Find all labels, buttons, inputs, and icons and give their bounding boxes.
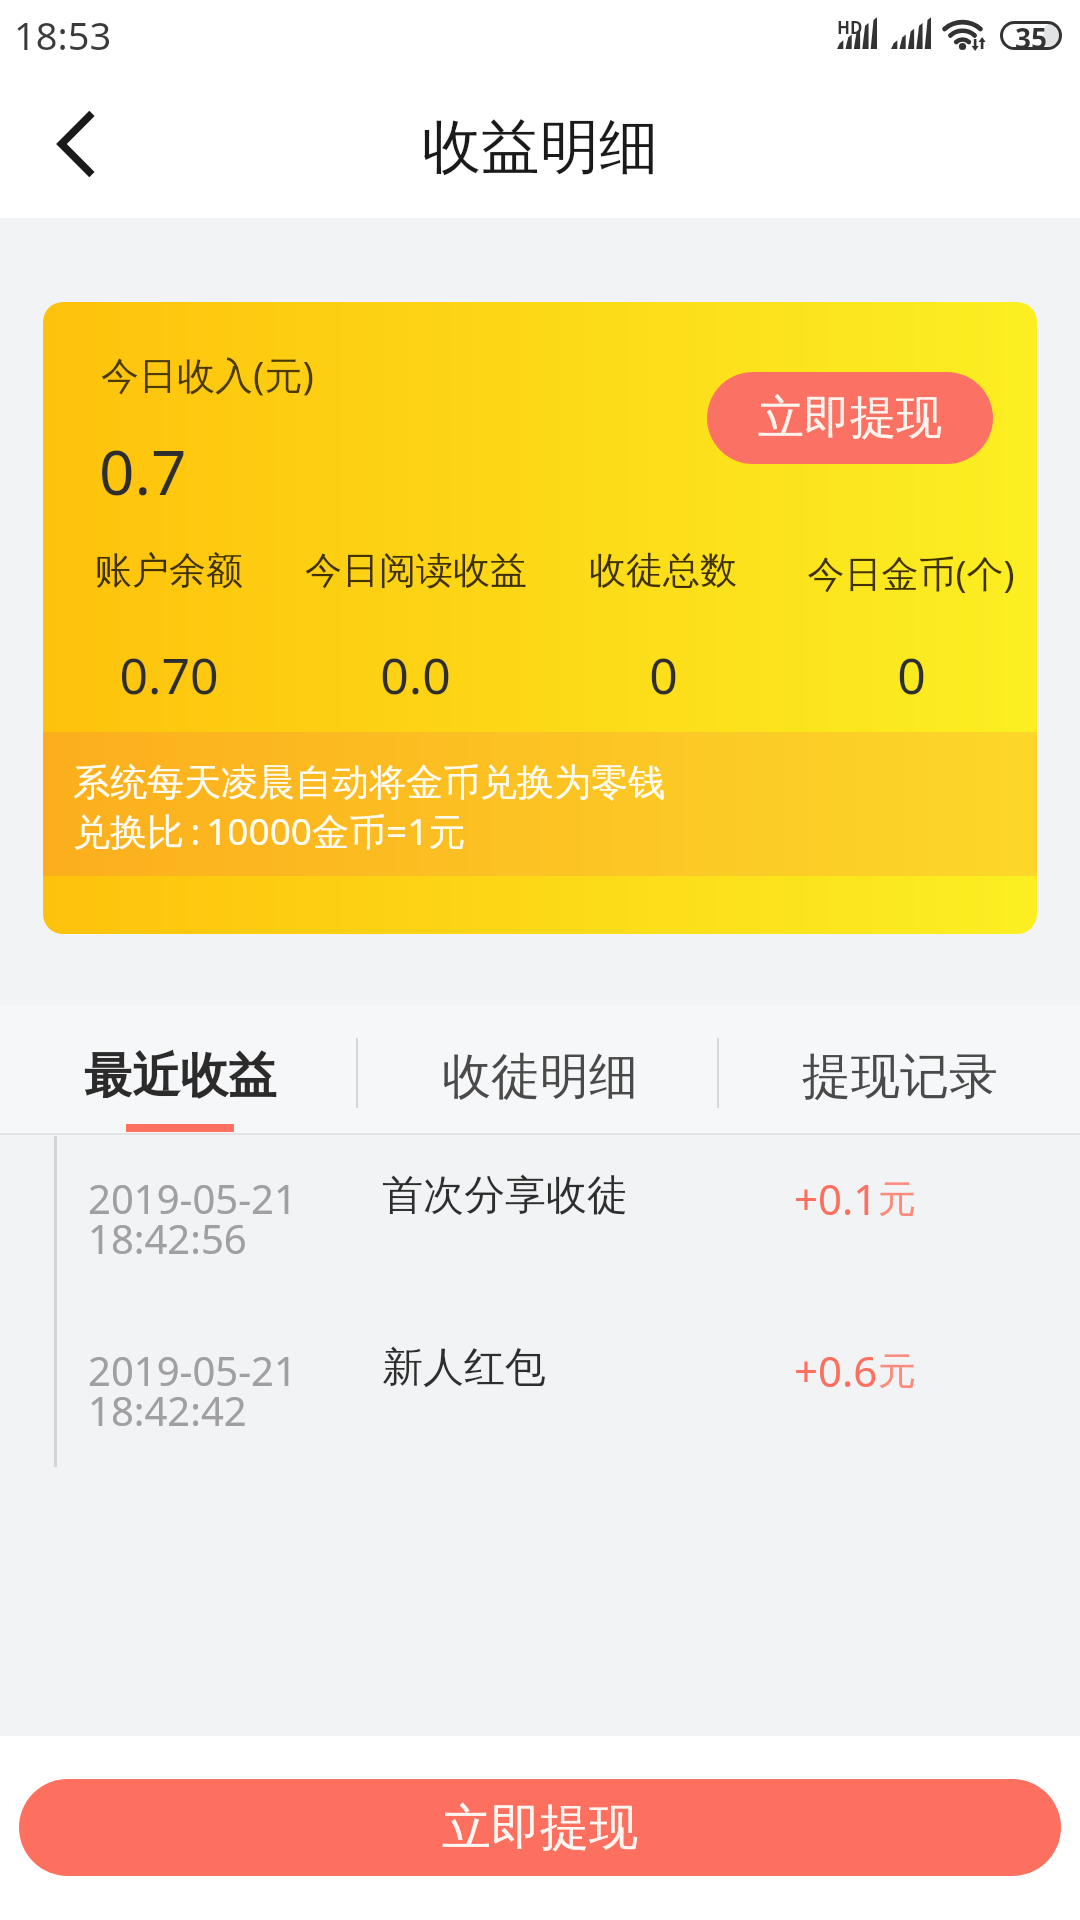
staticText: 18:42:42 <box>88 1383 247 1437</box>
staticText: 今日金币(个) <box>807 547 1015 598</box>
staticText: 新人红包 <box>382 1342 546 1394</box>
staticText: 35 <box>1015 19 1048 48</box>
staticText: 收徒明细 <box>442 1046 638 1108</box>
button[interactable]: Back <box>23 92 127 196</box>
staticText: 2019-05-21 <box>88 1171 297 1225</box>
staticText: 元 <box>878 1175 916 1223</box>
staticText: 18:42:56 <box>88 1211 247 1265</box>
staticText: 立即提现 <box>442 1797 638 1859</box>
staticText: 收徒总数 <box>589 547 737 594</box>
staticText: 0 <box>649 641 678 709</box>
staticText: 0 <box>897 641 926 709</box>
button[interactable]: 提现记录 <box>720 1005 1080 1135</box>
staticText: 今日收入(元) <box>101 348 314 400</box>
button[interactable]: 最近收益 <box>0 1005 360 1135</box>
staticText: 元 <box>878 1347 916 1395</box>
staticText: 最近收益 <box>84 1046 276 1106</box>
staticText: 兑换比 : 10000金币=1元 <box>73 805 466 856</box>
staticText: 18:53 <box>14 9 112 61</box>
button[interactable]: 立即提现 <box>19 1779 1061 1876</box>
button[interactable]: 2019-05-21 <box>0 1135 1080 1307</box>
staticText: 账户余额 <box>95 547 243 594</box>
staticText: 2019-05-21 <box>88 1343 297 1397</box>
staticText: 今日阅读收益 <box>305 547 527 594</box>
staticText: HD <box>837 16 863 39</box>
staticText: 收益明细 <box>422 110 658 184</box>
staticText: 立即提现 <box>758 389 942 447</box>
staticText: 提现记录 <box>802 1046 998 1108</box>
staticText: 0.7 <box>99 429 187 513</box>
staticText: +0.1 <box>794 1170 878 1227</box>
button[interactable]: 2019-05-21 <box>0 1307 1080 1479</box>
staticText: 系统每天凌晨自动将金币兑换为零钱 <box>73 759 665 806</box>
staticText: 0.70 <box>119 641 219 709</box>
staticText: 首次分享收徒 <box>382 1170 628 1222</box>
button[interactable]: 收徒明细 <box>360 1005 720 1135</box>
button[interactable]: 立即提现 <box>707 372 993 464</box>
staticText: 0.0 <box>380 641 451 709</box>
staticText: +0.6 <box>794 1342 878 1399</box>
